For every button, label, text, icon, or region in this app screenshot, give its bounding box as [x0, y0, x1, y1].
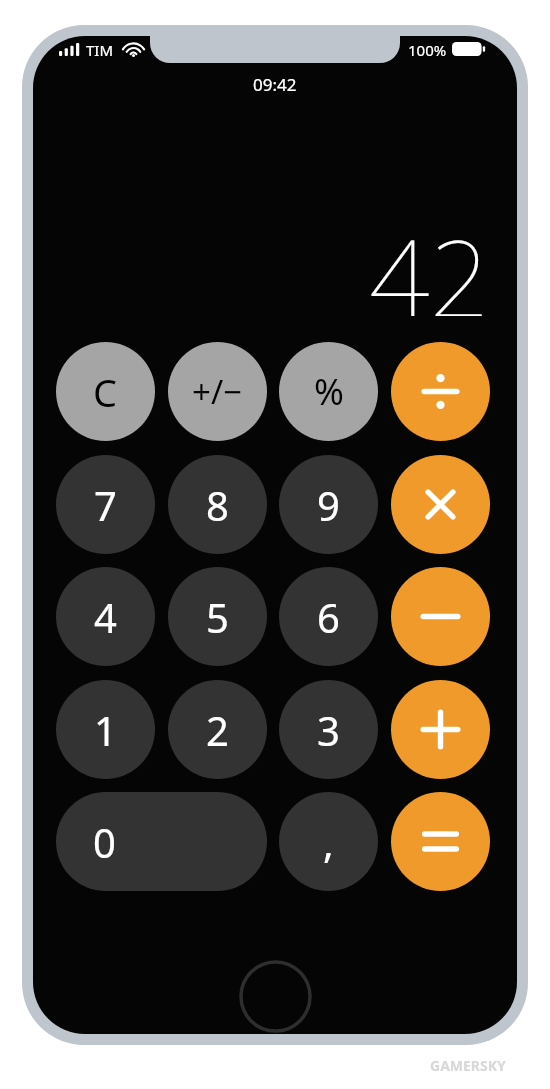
other: Home	[239, 960, 312, 1033]
button[interactable]: 7	[56, 455, 155, 554]
staticText: 7	[94, 478, 117, 532]
staticText: %	[314, 367, 344, 416]
button[interactable]: %	[279, 342, 378, 441]
staticText: GAMERSKY	[430, 1056, 506, 1075]
button[interactable]: 3	[279, 680, 378, 779]
staticText: 100%	[408, 40, 447, 60]
button[interactable]: Equals	[391, 792, 490, 891]
button[interactable]: 9	[279, 455, 378, 554]
button[interactable]: Subtract	[391, 567, 490, 666]
button[interactable]: 5	[168, 567, 267, 666]
staticText: 9	[317, 478, 340, 532]
staticText: TIM	[86, 40, 114, 60]
button[interactable]: Divide	[391, 342, 490, 441]
button[interactable]: 0	[56, 792, 267, 891]
button[interactable]: 8	[168, 455, 267, 554]
staticText: 42	[369, 204, 490, 316]
staticText: 09:42	[253, 73, 297, 96]
staticText: 4	[94, 590, 117, 644]
staticText: C	[93, 366, 118, 418]
button[interactable]: ,	[279, 792, 378, 891]
staticText: 2	[206, 703, 229, 757]
button[interactable]: 2	[168, 680, 267, 779]
button[interactable]: 6	[279, 567, 378, 666]
button[interactable]: 1	[56, 680, 155, 779]
button[interactable]: +/−	[168, 342, 267, 441]
button[interactable]: C	[56, 342, 155, 441]
staticText: 6	[317, 590, 340, 644]
button[interactable]: Multiply	[391, 455, 490, 554]
staticText: 3	[317, 703, 340, 757]
button[interactable]: 4	[56, 567, 155, 666]
staticText: 5	[206, 590, 229, 644]
staticText: 0	[93, 815, 116, 869]
staticText: +/−	[192, 369, 243, 414]
staticText: 8	[206, 478, 229, 532]
staticText: 1	[94, 703, 117, 757]
staticText: ,	[323, 815, 334, 869]
button[interactable]: Add	[391, 680, 490, 779]
